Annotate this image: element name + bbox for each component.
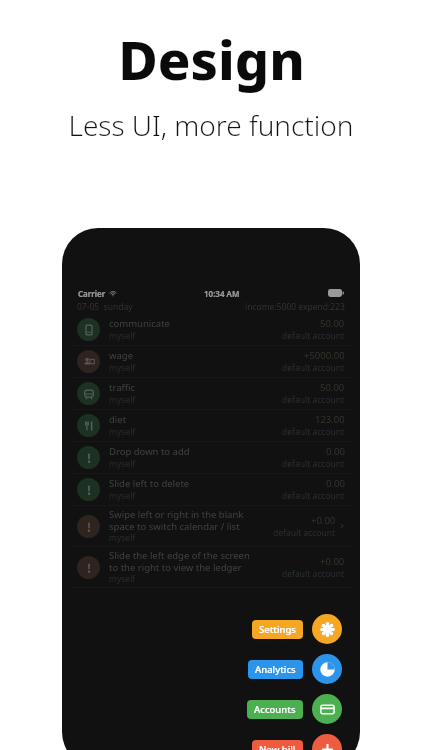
staticText: myself	[109, 394, 136, 406]
staticText: communicate	[109, 317, 170, 330]
staticText: Analytics	[255, 663, 296, 676]
button[interactable]: Accounts	[247, 694, 342, 724]
button[interactable]: Drop down to add	[70, 442, 352, 473]
button[interactable]: Swipe left or right in the blank space t…	[70, 506, 352, 546]
staticText: myself	[109, 490, 136, 502]
staticText: myself	[109, 362, 136, 374]
button[interactable]: wage	[70, 346, 352, 377]
staticText: default account	[282, 458, 345, 470]
staticText: New bill	[259, 743, 296, 750]
staticText: traffic	[109, 381, 136, 394]
staticText: Drop down to add	[109, 445, 190, 458]
staticText: default account	[282, 568, 345, 580]
staticText: diet	[109, 413, 127, 426]
staticText: wage	[109, 349, 133, 362]
staticText: default account	[273, 527, 336, 539]
staticText: 0.00	[326, 445, 345, 458]
staticText: 50.00	[320, 317, 345, 330]
staticText: 07-05 sunday	[77, 301, 133, 313]
staticText: myself	[109, 426, 136, 438]
staticText: myself	[109, 458, 136, 470]
staticText: default account	[282, 394, 345, 406]
staticText: Less UI, more function	[68, 106, 354, 144]
staticText: myself	[109, 532, 136, 544]
staticText: 10:34 AM	[204, 288, 240, 299]
staticText: +0.00	[320, 555, 345, 568]
button[interactable]: Slide the left edge of the screen to the…	[70, 547, 352, 587]
staticText: Slide the left edge of the screen to the…	[109, 549, 250, 573]
staticText: 50.00	[320, 381, 345, 394]
button[interactable]: New bill	[252, 734, 342, 750]
staticText: default account	[282, 362, 345, 374]
staticText: default account	[282, 490, 345, 502]
staticText: Settings	[259, 623, 296, 636]
button[interactable]: communicate	[70, 314, 352, 345]
staticText: default account	[282, 426, 345, 438]
staticText: Swipe left or right in the blank space t…	[109, 508, 244, 532]
staticText: Design	[118, 22, 305, 96]
staticText: +0.00	[311, 514, 336, 527]
staticText: myself	[109, 573, 136, 585]
button[interactable]: Analytics	[248, 654, 342, 684]
staticText: +5000.00	[304, 349, 345, 362]
staticText: 0.00	[326, 477, 345, 490]
staticText: default account	[282, 330, 345, 342]
button[interactable]: Settings	[252, 614, 342, 644]
staticText: Slide left to delete	[109, 477, 190, 490]
staticText: income:5000 expend:223	[245, 301, 345, 313]
button[interactable]: traffic	[70, 378, 352, 409]
button[interactable]: Slide left to delete	[70, 474, 352, 505]
staticText: Carrier	[78, 288, 106, 299]
staticText: Accounts	[254, 703, 296, 716]
button[interactable]: diet	[70, 410, 352, 441]
staticText: 123.00	[315, 413, 345, 426]
staticText: myself	[109, 330, 136, 342]
